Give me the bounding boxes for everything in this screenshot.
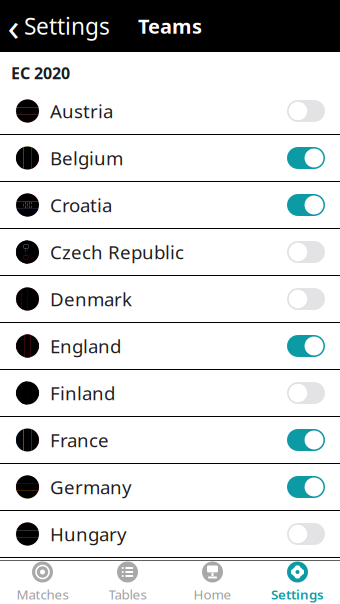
staticText: Hungary xyxy=(50,522,127,546)
staticText: Germany xyxy=(50,475,132,499)
staticText: Matches xyxy=(16,585,68,603)
button[interactable]: Austria xyxy=(0,88,340,135)
button[interactable]: ‹ xyxy=(0,4,110,48)
staticText: ‹ xyxy=(7,0,19,52)
button[interactable]: Matches xyxy=(0,561,85,603)
staticText: Belgium xyxy=(50,146,123,170)
staticText: EC 2020 xyxy=(11,62,70,84)
button[interactable]: Hungary xyxy=(0,511,340,558)
button[interactable]: Denmark xyxy=(0,276,340,323)
staticText: England xyxy=(50,334,121,358)
button[interactable]: England xyxy=(0,323,340,370)
staticText: Teams xyxy=(138,13,202,39)
button[interactable]: Home xyxy=(170,561,255,603)
button[interactable]: Belgium xyxy=(0,135,340,182)
staticText: Denmark xyxy=(50,287,132,311)
staticText: Tables xyxy=(108,585,146,603)
button[interactable]: Tables xyxy=(85,561,170,603)
staticText: Austria xyxy=(50,99,113,123)
button[interactable]: France xyxy=(0,417,340,464)
staticText: Finland xyxy=(50,381,115,405)
staticText: Home xyxy=(193,585,231,603)
staticText: Croatia xyxy=(50,193,112,217)
staticText: France xyxy=(50,428,109,452)
button[interactable]: Czech Republic xyxy=(0,229,340,276)
staticText: Czech Republic xyxy=(50,240,184,264)
button[interactable]: Croatia xyxy=(0,182,340,229)
button[interactable]: Settings xyxy=(255,561,340,603)
button[interactable]: Finland xyxy=(0,370,340,417)
staticText: Settings xyxy=(271,585,324,603)
button[interactable]: Germany xyxy=(0,464,340,511)
staticText: Settings xyxy=(24,11,110,41)
